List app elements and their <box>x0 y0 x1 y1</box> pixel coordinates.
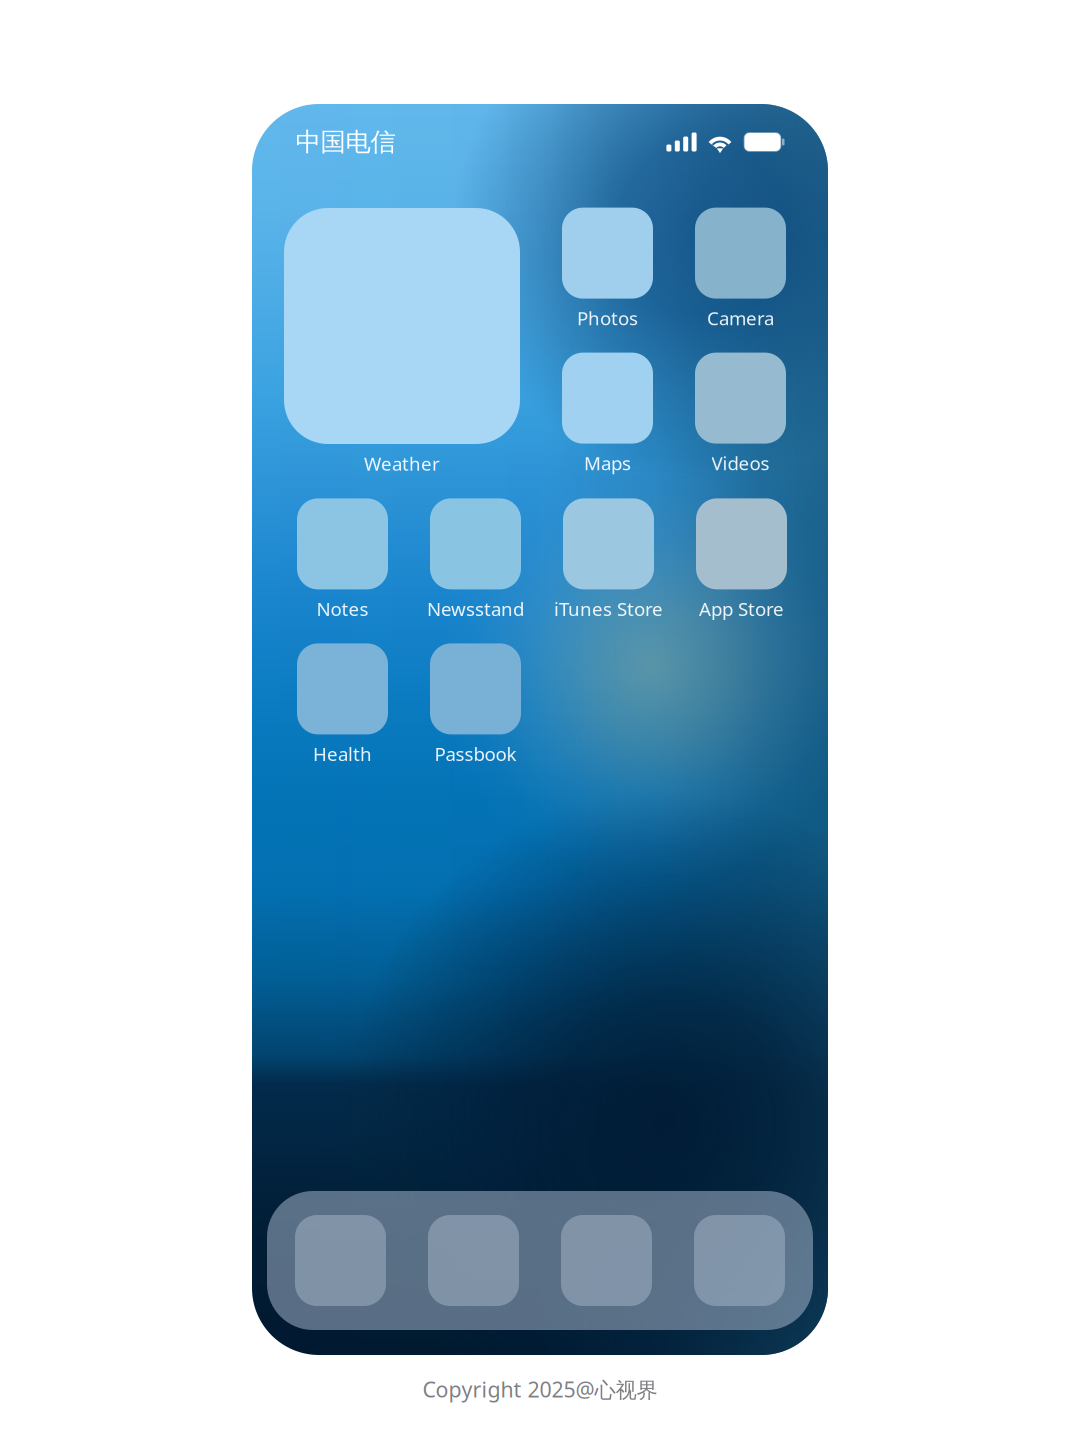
button[interactable]: Newsstand <box>430 499 521 621</box>
staticText: Videos <box>711 451 769 475</box>
button[interactable]: App <box>428 1215 519 1306</box>
button[interactable]: Passbook <box>430 644 521 766</box>
staticText: Health <box>313 741 372 766</box>
staticText: 中国电信 <box>295 126 395 157</box>
staticText: Photos <box>577 306 638 330</box>
button[interactable]: Notes <box>297 499 388 621</box>
staticText: Newsstand <box>427 596 524 621</box>
button[interactable]: Weather <box>284 208 520 476</box>
button[interactable]: App Store <box>696 499 787 621</box>
button[interactable]: Maps <box>562 353 653 475</box>
staticText: Maps <box>584 451 631 475</box>
staticText: iTunes Store <box>554 596 663 621</box>
button[interactable]: App <box>295 1215 386 1306</box>
button[interactable]: iTunes Store <box>563 499 654 621</box>
button[interactable]: App <box>561 1215 652 1306</box>
button[interactable]: Health <box>297 644 388 766</box>
button[interactable]: Camera <box>695 208 786 330</box>
button[interactable]: Photos <box>562 208 653 330</box>
staticText: Weather <box>364 451 440 476</box>
staticText: Passbook <box>434 741 516 766</box>
staticText: Copyright 2025@心视界 <box>422 1375 657 1403</box>
button[interactable]: Videos <box>695 353 786 475</box>
button[interactable]: App <box>694 1215 785 1306</box>
staticText: Camera <box>707 306 774 330</box>
staticText: App Store <box>699 596 784 621</box>
staticText: Notes <box>316 596 368 621</box>
